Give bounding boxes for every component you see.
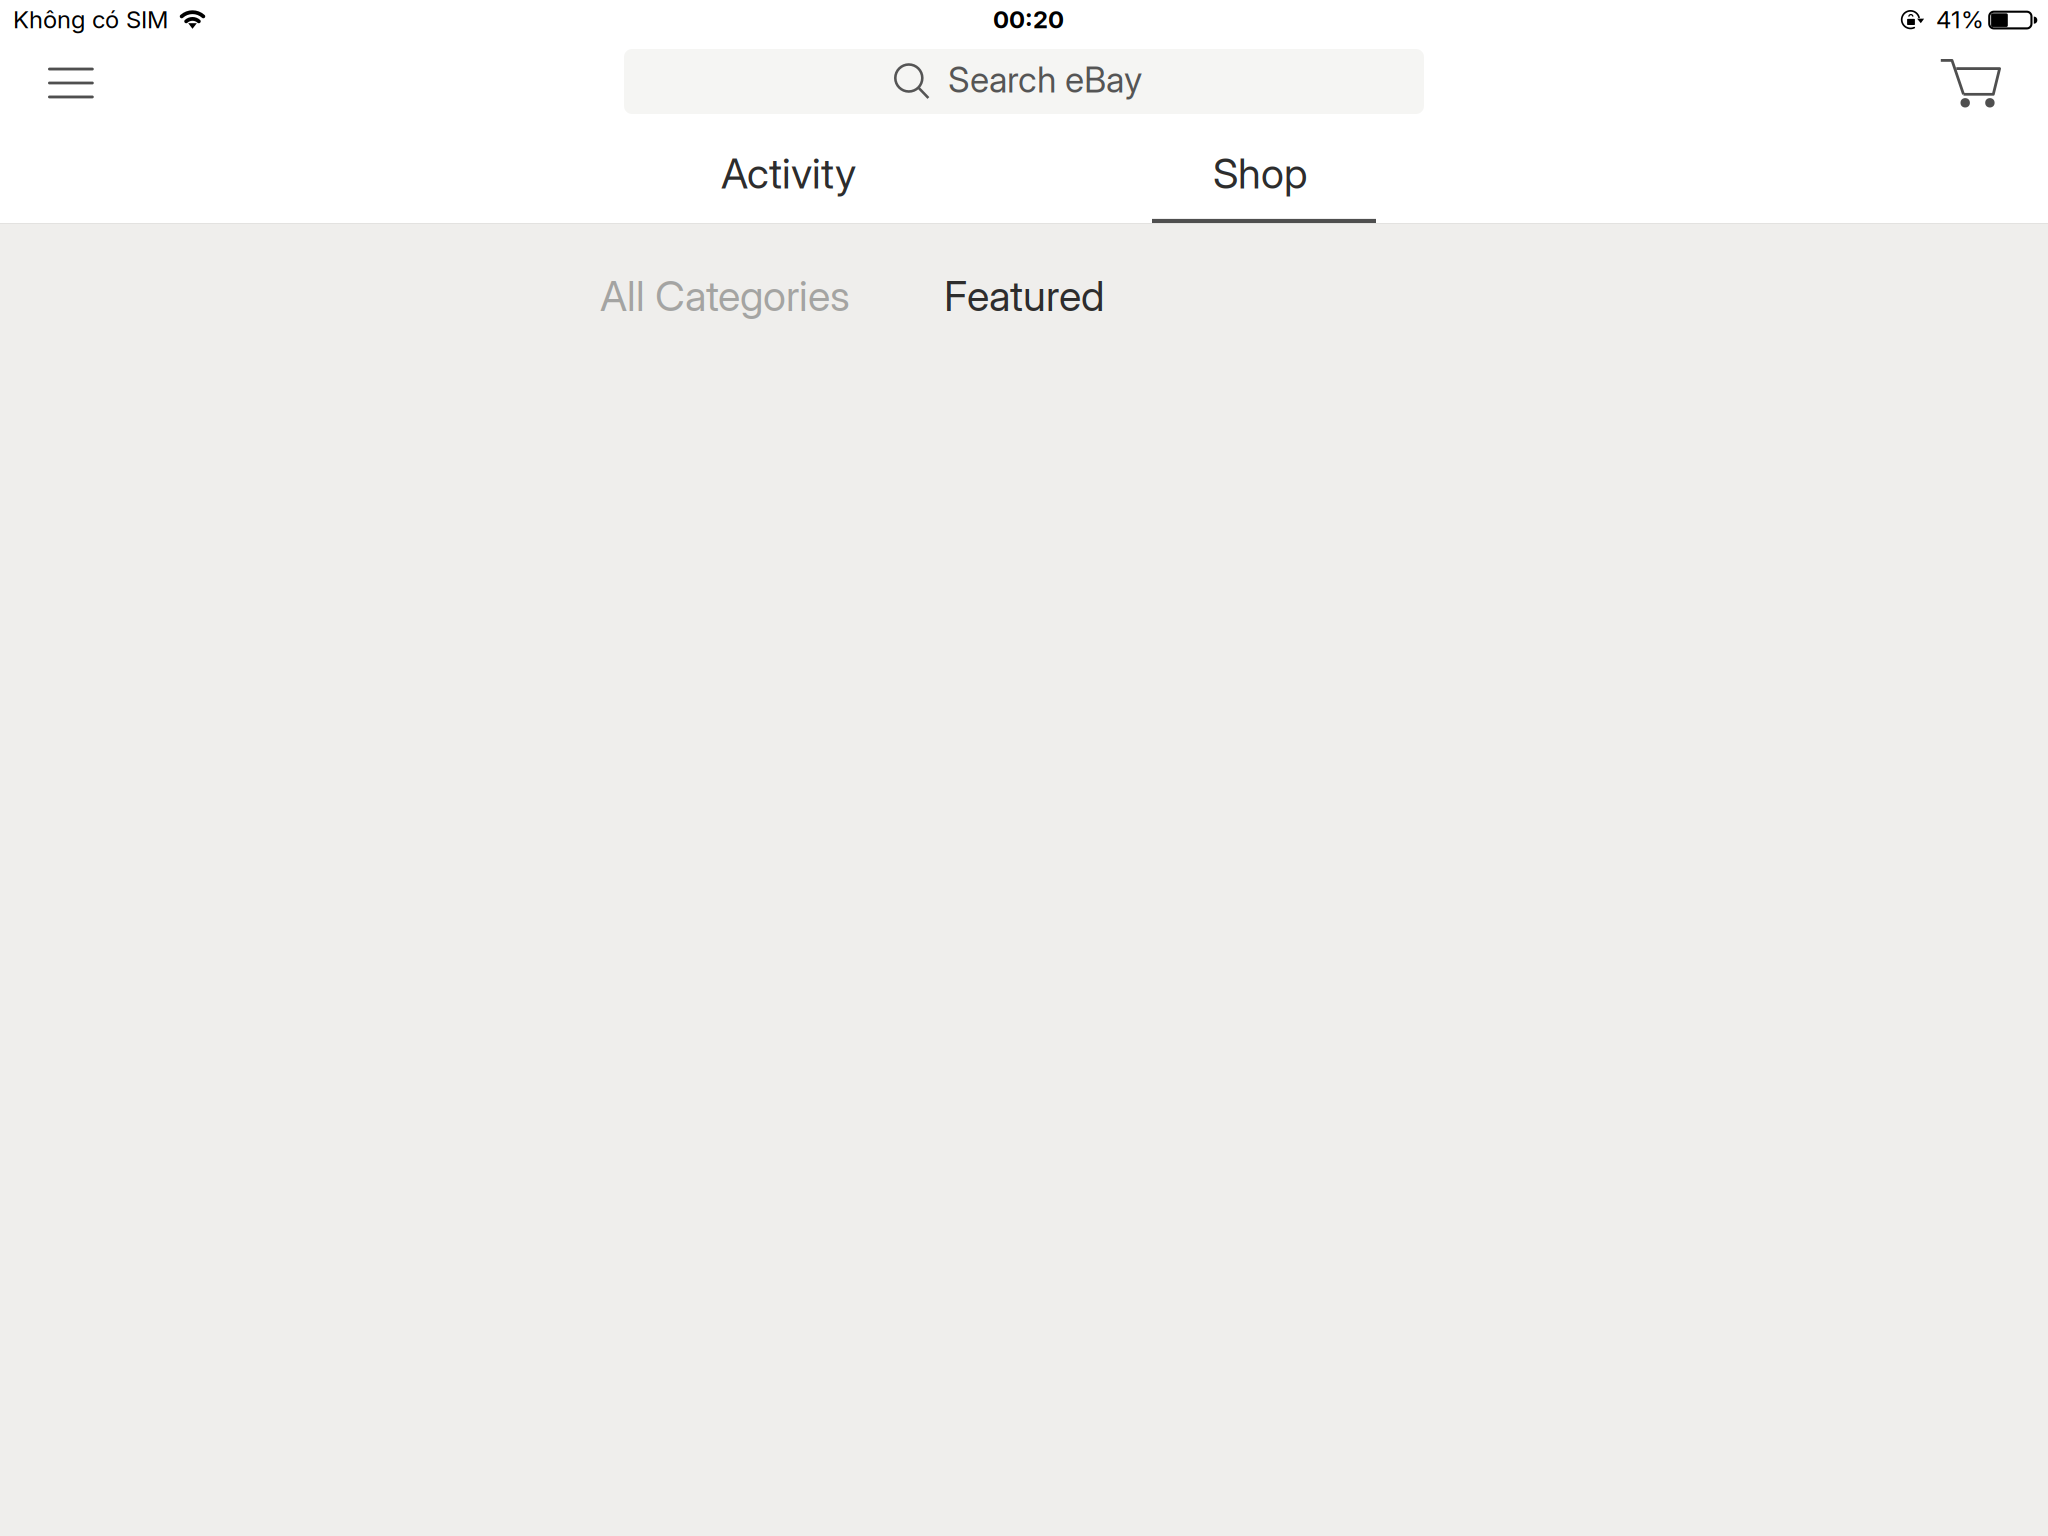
staticText: All Categories [600,271,850,321]
staticText: Activity [721,148,856,198]
staticText: 00:20 [993,5,1064,34]
button[interactable]: Activity [551,130,1023,223]
button[interactable]: Featured [944,266,1104,326]
button[interactable]: Search eBay [624,49,1424,114]
button[interactable]: Menu [26,45,116,120]
staticText: Featured [944,271,1104,321]
staticText: Không có SIM [13,5,168,34]
button[interactable]: All Categories [600,266,850,326]
staticText: 41% [1936,5,1984,34]
staticText: Search eBay [948,59,1142,101]
button[interactable]: Shopping cart [1924,43,2019,124]
staticText: Shop [1213,148,1307,198]
button[interactable]: Shop [1024,130,1496,223]
